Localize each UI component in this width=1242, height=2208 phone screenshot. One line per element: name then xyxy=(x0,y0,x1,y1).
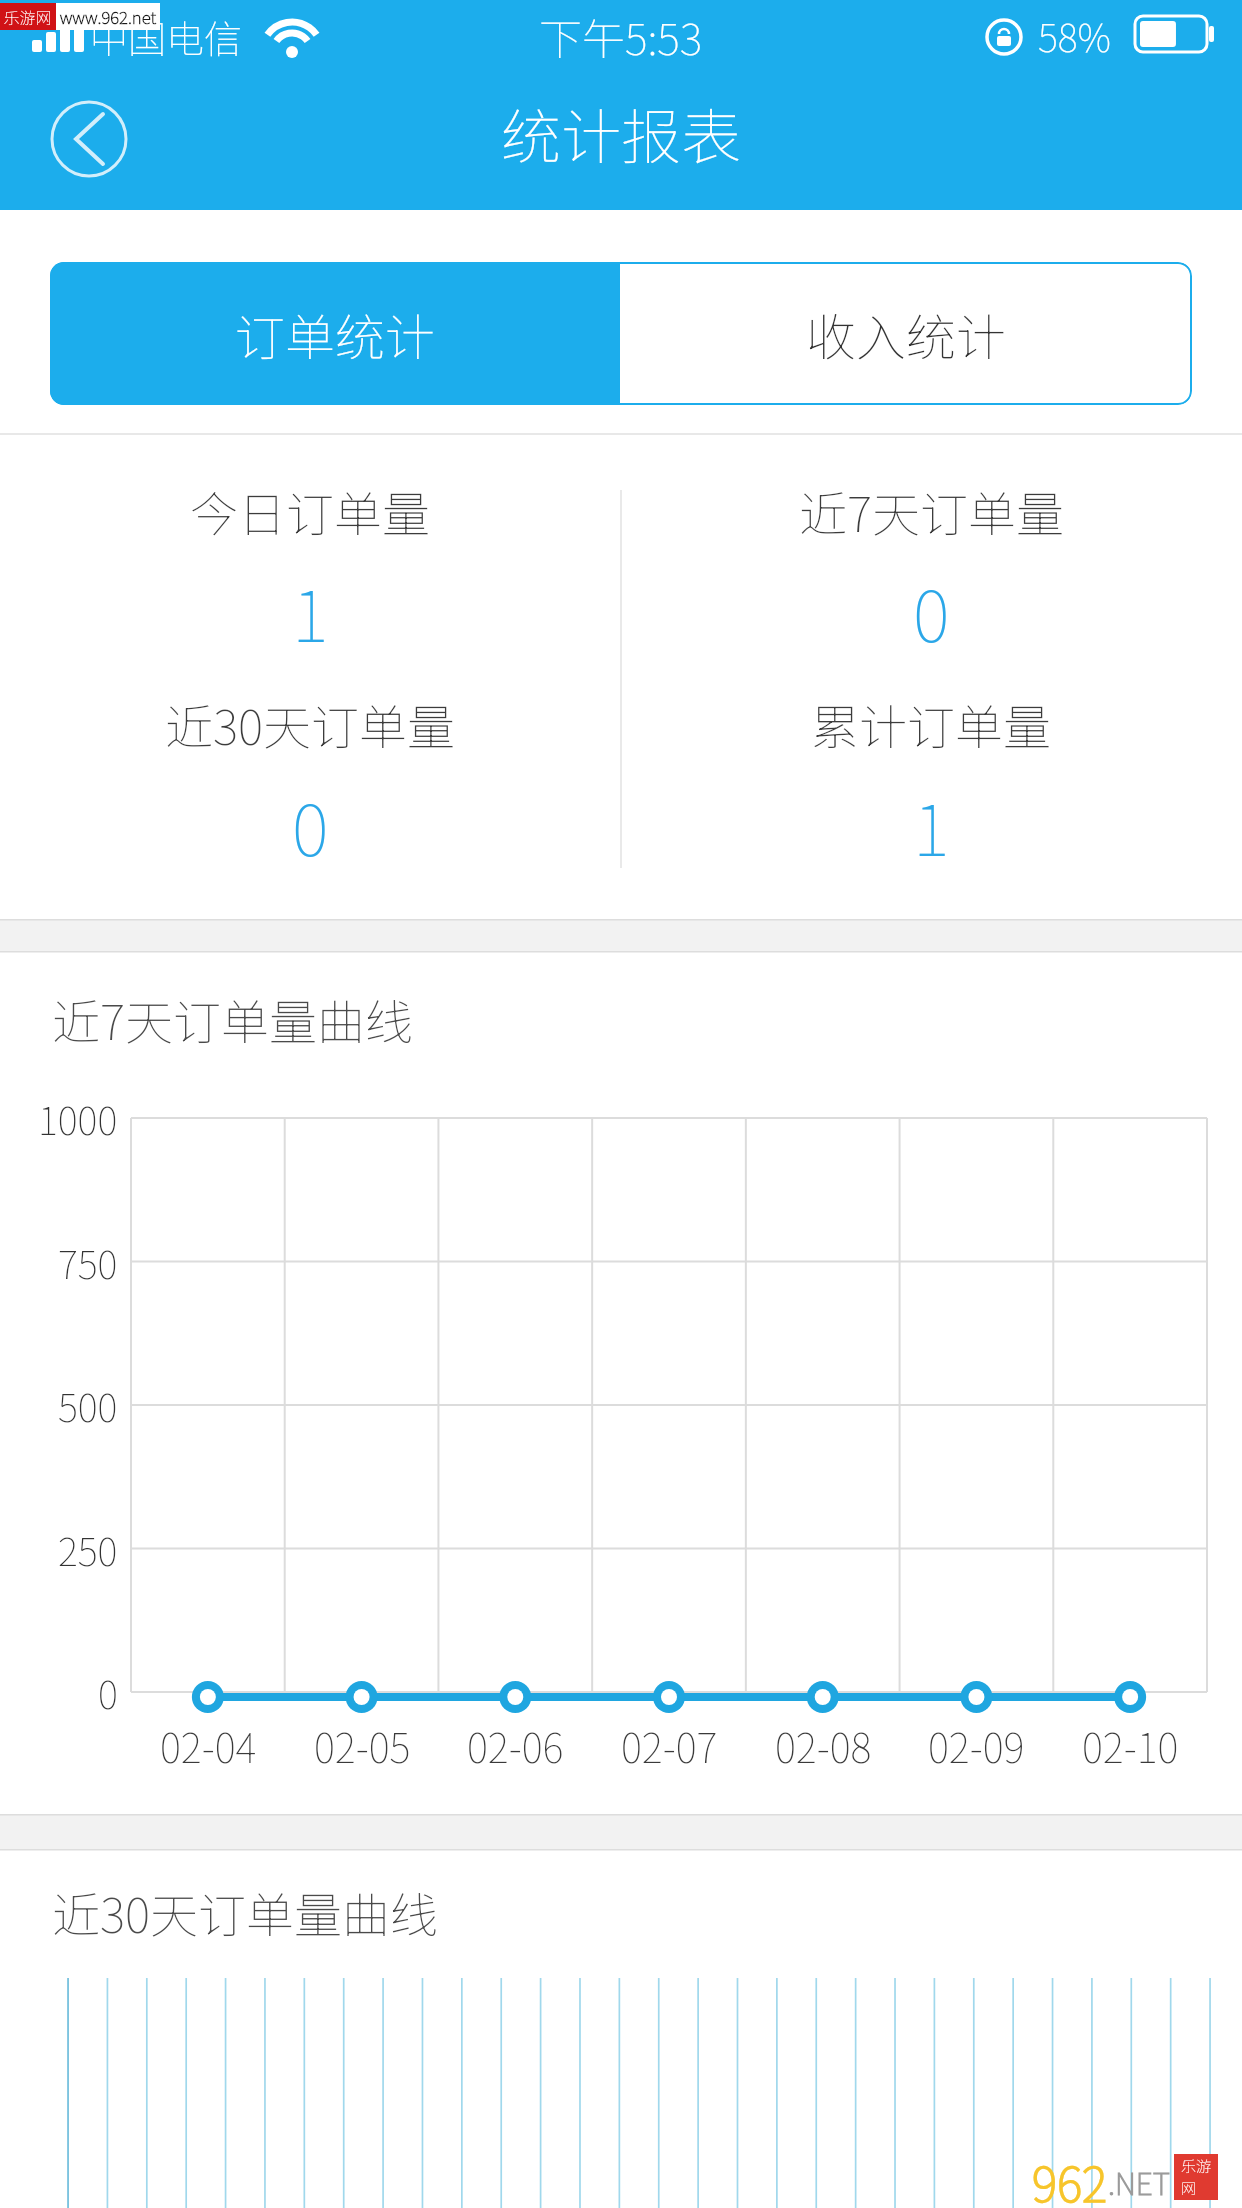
staticText: 1 xyxy=(292,561,329,662)
staticText: 近7天订单量 xyxy=(799,476,1065,546)
button[interactable]: 收入统计 xyxy=(620,262,1192,405)
staticText: .NET xyxy=(1108,2160,1170,2203)
staticText: www.962.net xyxy=(56,4,160,29)
staticText: 今日订单量 xyxy=(190,476,431,546)
staticText: 近7天订单量曲线 xyxy=(52,984,414,1054)
button[interactable]: 订单统计 xyxy=(50,262,620,405)
staticText: 下午5:53 xyxy=(539,5,703,67)
staticText: 1000 xyxy=(38,1091,118,1146)
staticText: 500 xyxy=(58,1378,118,1433)
staticText: 02-10 xyxy=(1082,1717,1179,1775)
staticText: 近30天订单量曲线 xyxy=(52,1877,439,1947)
staticText: 02-09 xyxy=(928,1717,1025,1775)
staticText: 累计订单量 xyxy=(811,689,1052,759)
staticText: 中国电信 xyxy=(90,9,243,64)
staticText: 订单统计 xyxy=(235,298,435,370)
staticText: 750 xyxy=(58,1235,118,1290)
staticText: 02-04 xyxy=(160,1717,257,1775)
staticText: 250 xyxy=(58,1522,118,1577)
staticText: 1 xyxy=(913,775,950,876)
staticText: 02-05 xyxy=(314,1717,411,1775)
staticText: 0 xyxy=(292,775,329,876)
staticText: 02-08 xyxy=(775,1717,872,1775)
staticText: 0 xyxy=(98,1665,118,1720)
staticText: 0 xyxy=(913,561,950,662)
staticText: 02-07 xyxy=(621,1717,718,1775)
staticText: 02-06 xyxy=(467,1717,564,1775)
staticText: 乐游 网 xyxy=(1181,2155,1212,2199)
staticText: 乐游网 xyxy=(0,5,56,28)
staticText: 近30天订单量 xyxy=(165,689,456,759)
staticText: 58% xyxy=(1038,8,1112,63)
staticText: 962 xyxy=(1032,2146,1108,2208)
staticText: 统计报表 xyxy=(501,89,741,176)
staticText: 收入统计 xyxy=(806,298,1006,370)
button[interactable] xyxy=(52,102,126,176)
